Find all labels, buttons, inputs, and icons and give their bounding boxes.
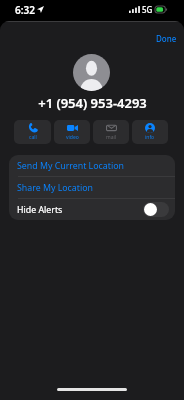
staticText: Done [156,33,177,44]
staticText: mail [106,134,117,141]
button[interactable]: Hide Alerts toggle [143,202,169,217]
button[interactable]: call [14,120,51,144]
staticText: info [145,134,155,141]
button[interactable]: Share My Location [9,177,175,198]
button[interactable]: mail [93,120,129,144]
staticText: 6:32 [15,3,35,17]
staticText: +1 (954) 953-4293 [38,94,147,112]
button[interactable]: info [132,120,168,144]
button[interactable]: Send My Current Location [9,155,175,176]
staticText: Share My Location [17,182,93,194]
staticText: video [66,134,79,141]
button[interactable]: video [54,120,90,144]
staticText: 5G [142,4,153,15]
staticText: Hide Alerts [17,204,63,216]
button[interactable]: Hide Alerts [9,199,175,220]
button[interactable]: Done [149,28,183,46]
staticText: Send My Current Location [17,160,124,172]
staticText: call [29,134,37,141]
